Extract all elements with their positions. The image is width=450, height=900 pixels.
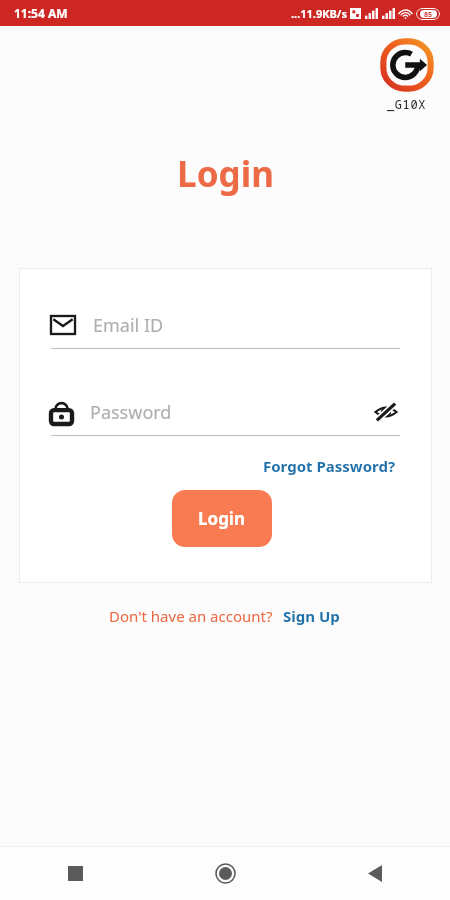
staticText: 11:54 AM xyxy=(14,5,68,21)
staticText: Email ID xyxy=(93,313,400,338)
button[interactable]: Email ID xyxy=(51,308,400,349)
button[interactable]: Sign Up xyxy=(281,604,342,628)
staticText: Don't have an account? xyxy=(109,606,273,626)
button[interactable]: Recents xyxy=(0,846,150,900)
button[interactable]: Back xyxy=(300,846,450,900)
button[interactable]: Home xyxy=(150,846,300,900)
button[interactable]: G10X logo xyxy=(378,36,436,112)
staticText: 85 xyxy=(424,10,433,18)
staticText: ...11.9KB/s xyxy=(291,6,347,21)
button[interactable]: Password xyxy=(51,395,400,436)
button[interactable]: Forgot Password? xyxy=(259,452,400,480)
staticText: Login xyxy=(198,507,246,530)
staticText: _G10X xyxy=(387,96,427,112)
button[interactable]: Show password xyxy=(372,398,400,426)
staticText: Login xyxy=(177,150,274,198)
button[interactable]: Login xyxy=(172,490,272,547)
staticText: Password xyxy=(90,400,372,425)
